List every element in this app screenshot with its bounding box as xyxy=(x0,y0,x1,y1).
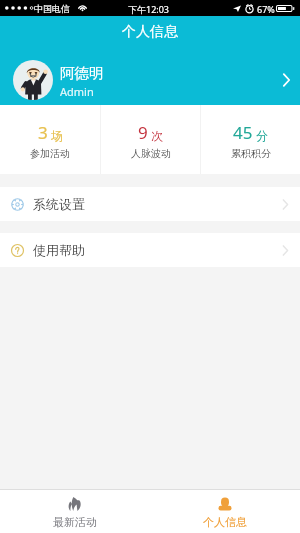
other: 最新活动 xyxy=(68,497,82,511)
staticText: 分 xyxy=(256,128,268,143)
staticText: 下午12:03 xyxy=(128,3,170,15)
staticText: 中国电信 xyxy=(34,3,70,14)
staticText: 阿德明 xyxy=(60,64,104,82)
button[interactable]: 使用帮助 xyxy=(0,233,300,267)
staticText: 个人信息 xyxy=(203,515,247,529)
button[interactable]: 最新活动 xyxy=(0,490,150,533)
staticText: 场 xyxy=(51,128,63,143)
button[interactable]: 个人信息 xyxy=(150,490,300,533)
button[interactable]: 9 xyxy=(101,105,200,174)
button[interactable]: 45 xyxy=(201,105,300,174)
staticText: 3 xyxy=(38,121,48,144)
staticText: 次 xyxy=(151,128,163,143)
staticText: 个人信息 xyxy=(122,23,178,41)
staticText: Admin xyxy=(60,84,94,99)
staticText: 67% xyxy=(257,3,275,15)
staticText: 累积积分 xyxy=(231,147,271,160)
staticText: 45 xyxy=(233,121,253,144)
button[interactable]: 阿德明 xyxy=(0,45,300,105)
staticText: 参加活动 xyxy=(30,147,70,160)
staticText: 人脉波动 xyxy=(131,147,171,160)
staticText: 使用帮助 xyxy=(33,242,85,258)
staticText: 最新活动 xyxy=(53,515,97,529)
other: 个人信息 xyxy=(218,497,232,511)
staticText: 系统设置 xyxy=(33,196,85,212)
button[interactable]: 系统设置 xyxy=(0,187,300,221)
staticText: 9 xyxy=(138,121,148,144)
button[interactable]: 3 xyxy=(0,105,100,174)
